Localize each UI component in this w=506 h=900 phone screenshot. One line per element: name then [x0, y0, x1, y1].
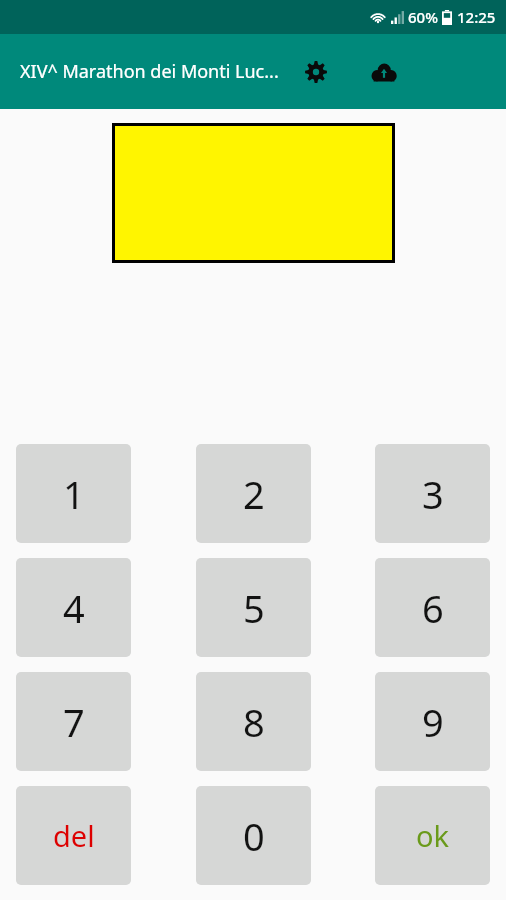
button[interactable]: 0	[196, 786, 311, 885]
staticText: ok	[416, 816, 450, 855]
staticText: 3	[422, 468, 444, 520]
staticText: XIV^ Marathon dei Monti Luc...	[20, 59, 279, 84]
button[interactable]: ok	[375, 786, 490, 885]
button[interactable]: 2	[196, 444, 311, 543]
button[interactable]: 9	[375, 672, 490, 771]
staticText: 8	[243, 696, 265, 748]
button[interactable]: Settings	[293, 49, 339, 95]
staticText: 6	[422, 582, 444, 634]
button[interactable]: 1	[16, 444, 131, 543]
button[interactable]: 7	[16, 672, 131, 771]
button[interactable]: Upload	[361, 49, 407, 95]
button[interactable]: 6	[375, 558, 490, 657]
button[interactable]: 5	[196, 558, 311, 657]
button[interactable]: del	[16, 786, 131, 885]
staticText: 4	[63, 582, 85, 634]
staticText: 2	[243, 468, 265, 520]
button[interactable]: 3	[375, 444, 490, 543]
button[interactable]: 4	[16, 558, 131, 657]
staticText: del	[53, 816, 95, 855]
staticText: 7	[63, 696, 85, 748]
button[interactable]: 8	[196, 672, 311, 771]
staticText: 9	[422, 696, 444, 748]
staticText: 12:25	[457, 7, 496, 27]
staticText: 60%	[408, 7, 438, 27]
staticText: 1	[63, 468, 85, 520]
staticText: 5	[243, 582, 265, 634]
staticText: 0	[243, 810, 265, 862]
